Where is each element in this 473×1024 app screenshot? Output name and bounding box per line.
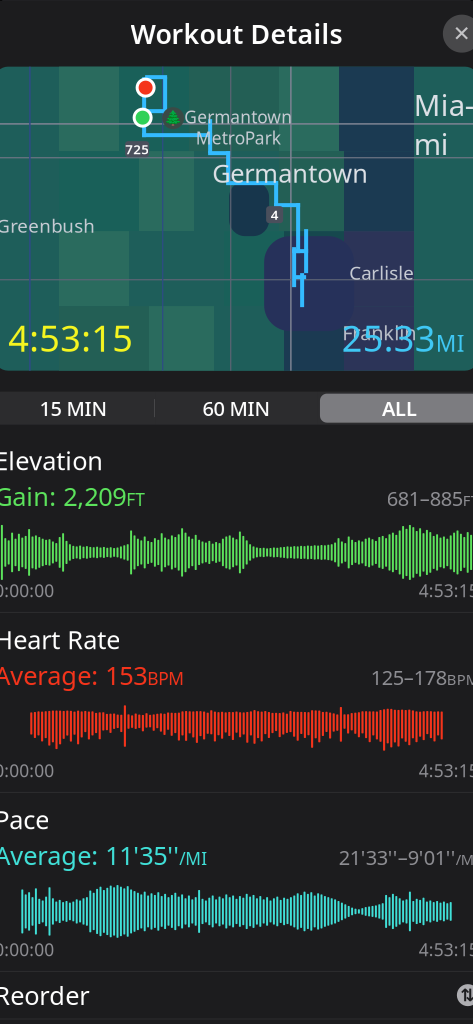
staticText: 60 MIN	[202, 395, 270, 421]
staticText: ⇅	[460, 985, 473, 1005]
button[interactable]: Reorder	[0, 972, 473, 1019]
staticText: Greenbush	[0, 213, 95, 238]
button[interactable]: Close	[443, 15, 473, 53]
staticText: 4:53:15	[419, 579, 473, 602]
staticText: 15 MIN	[40, 395, 108, 421]
staticText: 🌲	[164, 110, 182, 127]
staticText: BPM	[147, 667, 184, 690]
staticText: /MI	[179, 847, 207, 870]
staticText: FT	[463, 490, 473, 510]
staticText: 681–885	[387, 485, 463, 511]
staticText: Heart Rate	[0, 623, 120, 656]
staticText: 4	[271, 206, 279, 223]
button[interactable]: ALL	[318, 392, 473, 425]
staticText: Miami	[414, 85, 473, 163]
staticText: Average: 153	[0, 658, 147, 692]
staticText: 0:00:00	[0, 759, 54, 782]
button[interactable]: Learn More	[0, 1019, 473, 1024]
staticText: Reorder	[0, 978, 89, 1012]
staticText: 4:53:15	[419, 759, 473, 782]
staticText: ✕	[453, 21, 471, 46]
staticText: ALL	[382, 395, 417, 421]
staticText: 4:53:15	[8, 314, 133, 362]
staticText: Average: 11'35''	[0, 838, 179, 872]
staticText: 25.33	[342, 314, 436, 362]
staticText: 0:00:00	[0, 579, 54, 602]
button[interactable]: 60 MIN	[155, 392, 318, 425]
staticText: MI	[436, 328, 465, 358]
staticText: Germantown	[184, 105, 292, 128]
staticText: /MI	[456, 849, 473, 869]
staticText: 725	[125, 140, 149, 158]
staticText: 4:53:15	[419, 938, 473, 961]
staticText: BPM	[447, 669, 473, 689]
staticText: FT	[126, 488, 145, 511]
staticText: Gain: 2,209	[0, 479, 126, 513]
staticText: 125–178	[371, 664, 447, 690]
staticText: MetroPark	[196, 126, 281, 149]
staticText: Carlisle	[349, 260, 414, 285]
staticText: 0:00:00	[0, 938, 54, 961]
staticText: Germantown	[212, 156, 368, 190]
staticText: Workout Details	[130, 16, 342, 51]
staticText: Franklin	[342, 319, 416, 346]
staticText: Elevation	[0, 444, 103, 477]
staticText: 21'33''–9'01''	[339, 844, 456, 870]
staticText: Pace	[0, 803, 49, 836]
button[interactable]: 15 MIN	[0, 392, 155, 425]
